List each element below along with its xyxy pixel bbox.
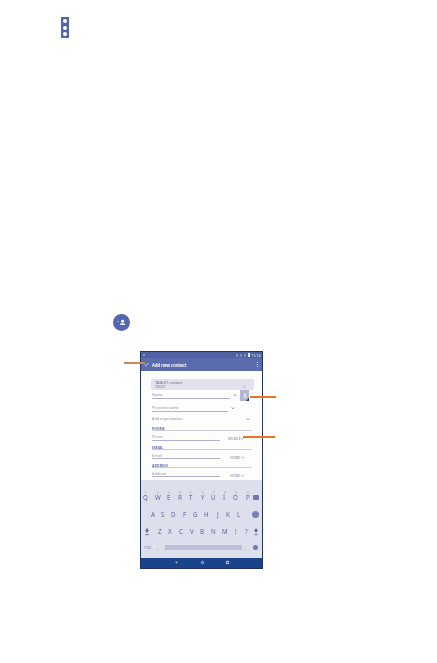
staticText: MOBILE [228,436,241,441]
button[interactable]: C [175,526,186,536]
staticText: EMAIL [152,445,164,450]
button[interactable]: N [208,526,219,536]
staticText: Phonetic name [152,405,179,410]
button[interactable]: TABLET contact [151,379,254,390]
staticText: L [237,510,241,518]
button[interactable]: G [190,509,201,519]
staticText: F [183,510,187,518]
staticText: N [211,527,216,535]
button[interactable]: U [208,492,219,502]
staticText: Y [201,493,205,501]
staticText: 4 [179,491,181,495]
button[interactable]: Back [171,558,181,567]
staticText: , [157,545,159,551]
button[interactable]: A [147,509,158,519]
button[interactable]: K [222,509,233,519]
button[interactable]: Home [197,558,207,567]
staticText: . [245,545,247,551]
staticText: 11:14 [251,353,261,358]
button[interactable]: X [164,526,175,536]
button[interactable]: E [163,492,174,502]
button[interactable]: Shift [251,526,260,536]
button[interactable]: T [185,492,196,502]
button[interactable]: B [197,526,208,536]
staticText: P [246,493,250,501]
button[interactable]: L [233,509,244,519]
staticText: ?123 [144,546,151,550]
button[interactable]: W [152,492,163,502]
staticText: W [155,493,161,501]
staticText: H [204,510,209,518]
button[interactable]: Save contact [141,358,152,371]
staticText: A [151,510,155,518]
button[interactable]: R [174,492,185,502]
staticText: 7 [213,491,215,495]
staticText: S [161,510,165,518]
staticText: O [233,493,238,501]
staticText: Add new contact [152,362,187,368]
staticText: T [189,493,193,501]
button[interactable]: Shift [142,526,151,536]
staticText: V [190,527,194,535]
staticText: K [226,510,230,518]
staticText: B [200,527,205,535]
button[interactable]: Add contact photo [240,390,249,401]
staticText: X [168,527,172,535]
staticText: U [211,493,216,501]
staticText: PHONE [152,426,165,431]
staticText: ! [235,527,237,535]
staticText: I [223,493,226,501]
staticText: ? [245,527,248,535]
staticText: ADDRESS [152,463,169,468]
staticText: G [193,510,198,518]
staticText: Add organization [152,416,183,421]
staticText: M [222,527,228,535]
button[interactable]: Backspace [250,492,262,502]
staticText: 5 [190,491,192,495]
button[interactable]: I [219,492,230,502]
button[interactable]: F [179,509,190,519]
button[interactable]: J [212,509,223,519]
button[interactable]: M [219,526,230,536]
button[interactable]: ? [241,526,252,536]
button[interactable]: . [242,542,249,553]
button[interactable]: Add new contact [113,314,130,331]
button[interactable]: Enter [249,509,262,519]
staticText: HOME [230,455,241,460]
button[interactable]: Z [154,526,165,536]
button[interactable]: , [154,542,162,553]
staticText: Email [152,453,162,458]
button[interactable]: D [168,509,179,519]
staticText: J [217,510,219,518]
staticText: E [167,493,171,501]
staticText: 8 [224,491,226,495]
staticText: Q [143,493,148,501]
staticText: Phone [152,434,164,439]
button[interactable]: V [186,526,197,536]
button[interactable]: H [201,509,212,519]
button[interactable]: Q [140,492,151,502]
button[interactable]: More options [252,358,262,371]
staticText: 3 [168,491,170,495]
staticText: 9 [235,491,237,495]
staticText: 1 [145,491,147,495]
staticText: 0 [247,491,249,495]
button[interactable]: ! [230,526,241,536]
button[interactable]: Recent apps [222,558,232,567]
button[interactable]: Emoji [250,542,261,553]
button[interactable]: ?123 [141,542,153,553]
button[interactable]: Y [197,492,208,502]
button[interactable]: S [157,509,168,519]
staticText: D [171,510,176,518]
staticText: Address [152,471,167,476]
button[interactable]: O [230,492,241,502]
staticText: C [179,527,183,535]
staticText: TABLET [155,385,166,389]
staticText: Z [158,527,162,535]
staticText: 2 [157,491,159,495]
staticText: Name [152,392,163,397]
button[interactable]: P [242,492,253,502]
staticText: 6 [202,491,204,495]
button[interactable]: More options [61,17,69,38]
